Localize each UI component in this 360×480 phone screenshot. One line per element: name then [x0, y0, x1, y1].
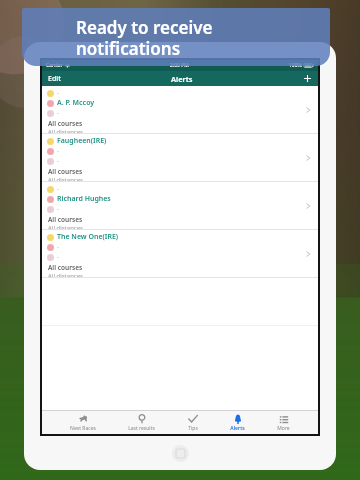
- staticText: -: [57, 185, 59, 193]
- staticText: Edit: [48, 74, 61, 84]
- staticText: More: [277, 425, 290, 432]
- staticText: All courses: [48, 215, 83, 224]
- button[interactable]: -: [42, 182, 318, 230]
- staticText: 100%: [289, 62, 302, 69]
- staticText: Richard Hughes: [57, 194, 111, 204]
- staticText: -: [57, 253, 59, 261]
- staticText: All courses: [48, 167, 83, 176]
- staticText: -: [57, 205, 59, 213]
- button[interactable]: More: [273, 413, 294, 433]
- staticText: All distances: [48, 176, 83, 181]
- staticText: Next Races: [70, 425, 96, 432]
- staticText: -: [57, 109, 59, 117]
- staticText: Faugheen(IRE): [57, 136, 107, 146]
- button[interactable]: -: [42, 86, 318, 134]
- staticText: All distances: [48, 128, 83, 133]
- staticText: A. P. Mccoy: [57, 98, 95, 108]
- staticText: -: [57, 147, 59, 155]
- staticText: Carrier: [46, 62, 63, 69]
- staticText: -: [57, 89, 59, 97]
- button[interactable]: Edit: [42, 71, 67, 86]
- staticText: Last results: [128, 425, 155, 432]
- staticText: 2:09 PM: [170, 62, 189, 69]
- button[interactable]: Add alert: [297, 71, 318, 86]
- button[interactable]: The New One(IRE): [42, 230, 318, 278]
- button[interactable]: Next Races: [66, 413, 100, 433]
- staticText: All distances: [48, 224, 83, 229]
- button[interactable]: Faugheen(IRE): [42, 134, 318, 182]
- staticText: Alerts: [230, 425, 245, 432]
- staticText: All courses: [48, 119, 83, 128]
- button[interactable]: Last results: [124, 413, 159, 433]
- staticText: -: [57, 157, 59, 165]
- staticText: The New One(IRE): [57, 232, 119, 242]
- staticText: All distances: [48, 272, 83, 277]
- staticText: -: [57, 243, 59, 251]
- staticText: Ready to receive notifications: [76, 16, 213, 60]
- staticText: All courses: [48, 263, 83, 272]
- button[interactable]: Tips: [184, 413, 202, 433]
- staticText: Tips: [188, 425, 198, 432]
- button[interactable]: Alerts: [226, 413, 249, 433]
- staticText: Alerts: [171, 74, 193, 84]
